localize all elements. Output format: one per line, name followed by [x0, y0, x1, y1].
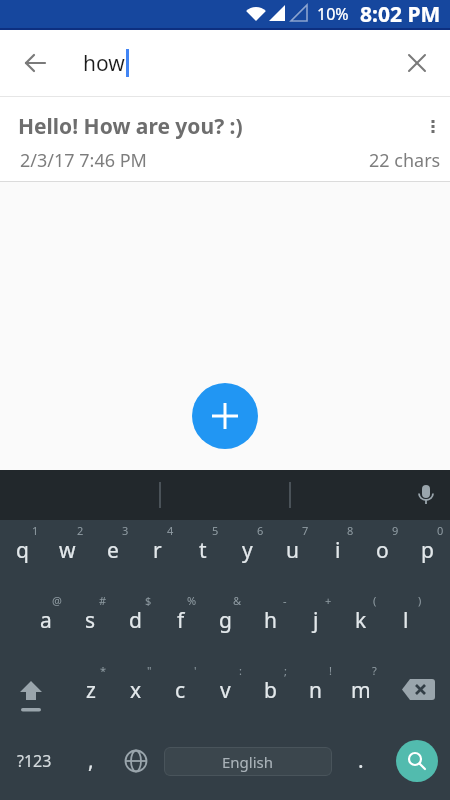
button[interactable] [428, 119, 438, 135]
staticText: l [403, 606, 409, 635]
staticText: h [264, 606, 277, 635]
staticText: * [100, 663, 107, 678]
staticText: j [313, 606, 319, 635]
staticText: q [16, 536, 29, 565]
staticText: b [264, 676, 277, 705]
staticText: p [421, 536, 434, 565]
button[interactable]: 5 [180, 520, 225, 590]
button[interactable]: , [68, 730, 113, 800]
button[interactable]: - [248, 590, 293, 660]
staticText: a [40, 606, 52, 635]
staticText: ( [373, 593, 377, 608]
staticText: o [376, 536, 389, 565]
staticText: 5 [212, 523, 219, 538]
button[interactable]: 0 [405, 520, 450, 590]
button[interactable]: Hello! How are you? :) [0, 97, 450, 182]
staticText: w [59, 536, 76, 565]
staticText: i [335, 536, 341, 565]
staticText: k [355, 606, 367, 635]
button[interactable]: % [158, 590, 203, 660]
button[interactable] [0, 33, 60, 93]
staticText: @ [52, 593, 62, 608]
staticText: ; [284, 663, 287, 678]
button[interactable] [383, 660, 450, 730]
button[interactable]: ! [293, 660, 338, 730]
staticText: ? [372, 663, 377, 678]
button[interactable]: # [68, 590, 113, 660]
button[interactable] [113, 730, 158, 800]
button[interactable] [0, 660, 68, 730]
staticText: x [130, 676, 142, 705]
button[interactable]: 4 [135, 520, 180, 590]
staticText: v [220, 676, 231, 705]
staticText: c [175, 676, 186, 705]
button[interactable]: ' [158, 660, 203, 730]
button[interactable]: English [158, 730, 338, 800]
button[interactable]: @ [23, 590, 68, 660]
staticText: how [83, 49, 125, 78]
button[interactable]: $ [113, 590, 158, 660]
button[interactable]: 1 [0, 520, 45, 590]
button[interactable]: ) [383, 590, 428, 660]
button[interactable] [411, 480, 441, 510]
staticText: ) [418, 593, 422, 608]
button[interactable]: ; [248, 660, 293, 730]
staticText: , [88, 746, 94, 775]
staticText: ! [329, 663, 332, 678]
button[interactable]: ?123 [0, 730, 68, 800]
button[interactable] [389, 35, 445, 91]
staticText: . [358, 746, 364, 775]
staticText: 7 [302, 523, 309, 538]
staticText: 8:02 PM [360, 0, 441, 28]
staticText: # [99, 593, 107, 608]
button[interactable]: 7 [270, 520, 315, 590]
staticText: 4 [167, 523, 174, 538]
staticText: 8 [347, 523, 354, 538]
staticText: r [153, 536, 162, 565]
button[interactable]: & [203, 590, 248, 660]
button[interactable]: ( [338, 590, 383, 660]
staticText: n [309, 676, 322, 705]
staticText: t [199, 536, 207, 565]
staticText: 10% [317, 3, 349, 25]
staticText: s [85, 606, 96, 635]
staticText: Hello! How are you? :) [18, 112, 428, 141]
button[interactable]: 9 [360, 520, 405, 590]
staticText: + [325, 593, 332, 608]
staticText: 22 chars [369, 148, 441, 173]
button[interactable]: 2 [45, 520, 90, 590]
staticText: 9 [392, 523, 399, 538]
staticText: ?123 [17, 750, 52, 772]
staticText: m [351, 676, 371, 705]
staticText: 2/3/17 7:46 PM [20, 148, 369, 173]
staticText: " [147, 663, 152, 678]
staticText: 1 [32, 523, 39, 538]
staticText: ' [194, 663, 197, 678]
staticText: 6 [257, 523, 264, 538]
staticText: 2 [77, 523, 84, 538]
button[interactable]: + [293, 590, 338, 660]
button[interactable] [192, 383, 258, 449]
button[interactable]: 3 [90, 520, 135, 590]
staticText: g [219, 606, 232, 635]
staticText: $ [145, 593, 152, 608]
staticText: z [86, 676, 96, 705]
button[interactable]: 6 [225, 520, 270, 590]
staticText: f [177, 606, 185, 635]
button[interactable] [383, 730, 450, 800]
button[interactable]: " [113, 660, 158, 730]
button[interactable]: ? [338, 660, 383, 730]
staticText: e [107, 536, 119, 565]
button[interactable]: 8 [315, 520, 360, 590]
staticText: & [233, 593, 242, 608]
staticText: : [239, 663, 242, 678]
staticText: 3 [122, 523, 129, 538]
button[interactable]: * [68, 660, 113, 730]
staticText: y [242, 536, 253, 565]
staticText: 0 [437, 523, 444, 538]
staticText: English [222, 752, 274, 772]
button[interactable]: . [338, 730, 383, 800]
button[interactable]: : [203, 660, 248, 730]
staticText: u [286, 536, 299, 565]
staticText: - [283, 593, 287, 608]
